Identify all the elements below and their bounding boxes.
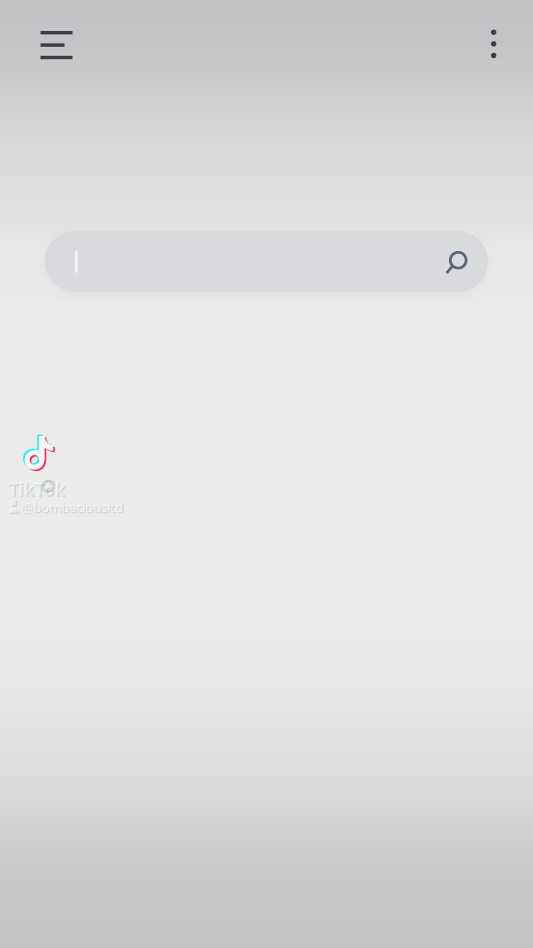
button[interactable]: More options [476,15,511,72]
staticText: @bombaciousltd [22,499,124,517]
staticText: TikTok [10,478,67,501]
button[interactable] [45,231,488,292]
staticText: @bombaciousltd [21,498,123,516]
button[interactable]: Menu [28,17,84,73]
staticText: TikTok [9,477,66,500]
